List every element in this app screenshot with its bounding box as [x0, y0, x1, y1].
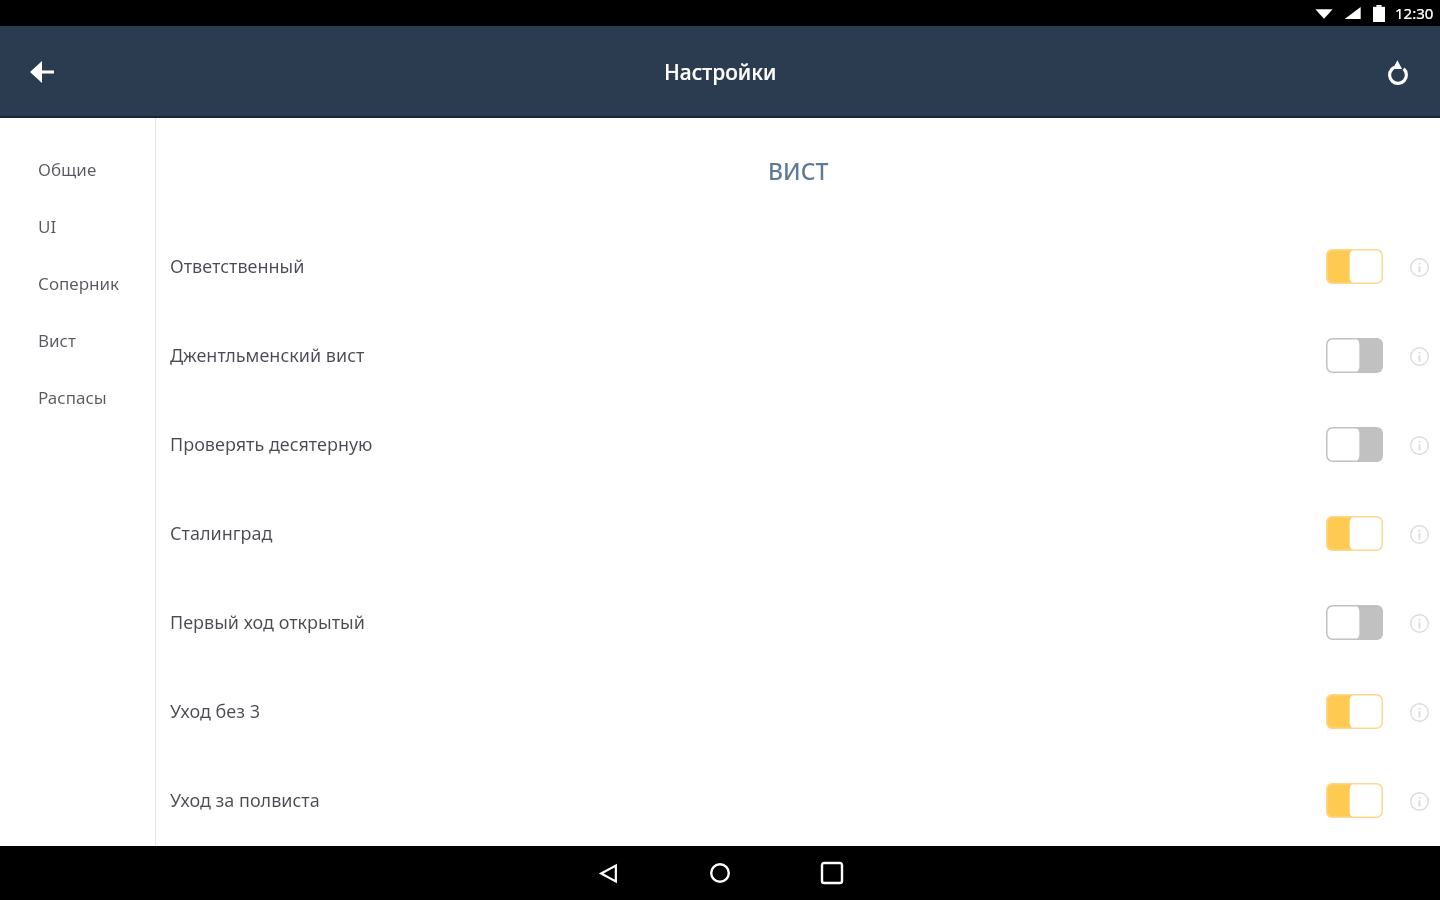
- button[interactable]: Первый ход открытый: [156, 578, 1440, 667]
- button[interactable]: Info: [1403, 518, 1435, 550]
- button[interactable]: Switch off: [1326, 427, 1383, 462]
- button[interactable]: Switch on: [1326, 516, 1383, 551]
- staticText: ВИСТ: [768, 155, 829, 186]
- staticText: Уход за полвиста: [170, 788, 1326, 813]
- button[interactable]: Джентльменский вист: [156, 311, 1440, 400]
- button[interactable]: Info: [1403, 607, 1435, 639]
- button[interactable]: Info: [1403, 785, 1435, 817]
- staticText: Соперник: [38, 272, 120, 295]
- button[interactable]: Switch on: [1326, 694, 1383, 729]
- button[interactable]: Сталинград: [156, 489, 1440, 578]
- button[interactable]: Recents: [802, 846, 862, 900]
- button[interactable]: Info: [1403, 429, 1435, 461]
- button[interactable]: Общие: [0, 141, 155, 198]
- staticText: Настройки: [664, 58, 777, 87]
- button[interactable]: Back: [20, 50, 64, 94]
- button[interactable]: Switch off: [1326, 338, 1383, 373]
- button[interactable]: Back: [578, 846, 638, 900]
- staticText: Сталинград: [170, 521, 1326, 546]
- staticText: Ответственный: [170, 254, 1326, 279]
- staticText: Распасы: [38, 386, 107, 409]
- button[interactable]: Соперник: [0, 255, 155, 312]
- button[interactable]: UI: [0, 198, 155, 255]
- button[interactable]: Switch off: [1326, 605, 1383, 640]
- staticText: Общие: [38, 158, 97, 181]
- button[interactable]: Info: [1403, 251, 1435, 283]
- button[interactable]: Switch on: [1326, 249, 1383, 284]
- button[interactable]: Restore defaults: [1376, 50, 1420, 94]
- button[interactable]: Уход за полвиста: [156, 756, 1440, 845]
- staticText: 12:30: [1395, 3, 1434, 23]
- button[interactable]: Home: [690, 846, 750, 900]
- button[interactable]: Switch on: [1326, 783, 1383, 818]
- staticText: UI: [38, 215, 57, 238]
- staticText: Проверять десятерную: [170, 432, 1326, 457]
- button[interactable]: Проверять десятерную: [156, 400, 1440, 489]
- button[interactable]: Распасы: [0, 369, 155, 426]
- staticText: Джентльменский вист: [170, 343, 1326, 368]
- staticText: Первый ход открытый: [170, 610, 1326, 635]
- staticText: Уход без 3: [170, 699, 1326, 724]
- button[interactable]: Info: [1403, 696, 1435, 728]
- button[interactable]: Вист: [0, 312, 155, 369]
- button[interactable]: Уход без 3: [156, 667, 1440, 756]
- staticText: Вист: [38, 329, 76, 352]
- button[interactable]: Ответственный: [156, 222, 1440, 311]
- button[interactable]: Info: [1403, 340, 1435, 372]
